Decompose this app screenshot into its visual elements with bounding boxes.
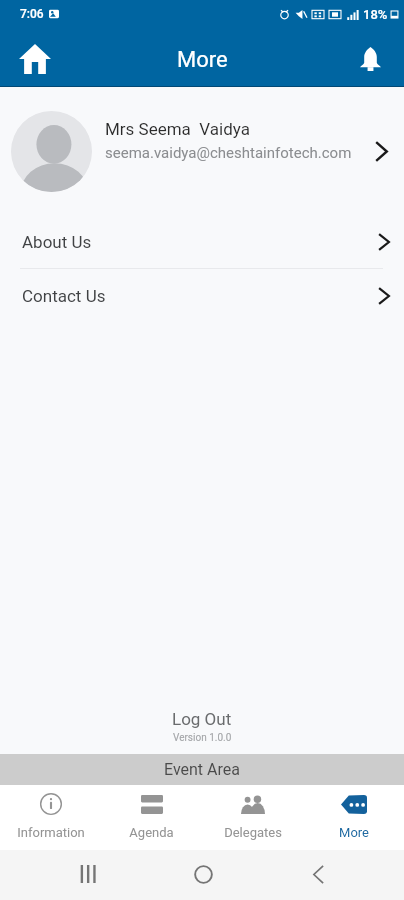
button[interactable]: Information: [0, 785, 101, 850]
staticText: 18%: [363, 7, 388, 22]
button[interactable]: Agenda: [101, 785, 202, 850]
other: Recents: [80, 865, 97, 883]
button[interactable]: Delegates: [202, 785, 303, 850]
button[interactable]: Contact Us: [0, 269, 404, 322]
staticText: Delegates: [224, 825, 282, 840]
staticText: seema.vaidya@cheshtainfotech.com: [105, 144, 352, 162]
staticText: More: [177, 47, 228, 73]
other: Open profile: [375, 141, 388, 162]
other: Back: [313, 865, 324, 884]
staticText: Version 1.0.0: [173, 732, 232, 744]
button[interactable]: About Us: [0, 215, 404, 268]
button[interactable]: Log Out: [154, 707, 250, 731]
staticText: About Us: [22, 232, 364, 252]
staticText: Information: [17, 825, 85, 840]
button[interactable]: Notifications: [346, 33, 394, 81]
staticText: Agenda: [129, 825, 174, 840]
staticText: Contact Us: [22, 286, 364, 306]
staticText: Event Area: [164, 760, 240, 779]
staticText: Mrs Seema Vaidya: [105, 119, 250, 139]
staticText: More: [339, 825, 369, 840]
button[interactable]: More: [303, 785, 404, 850]
staticText: 7:06: [20, 7, 44, 21]
button[interactable]: Home: [11, 33, 59, 81]
button[interactable]: Mrs Seema Vaidya: [0, 87, 404, 215]
staticText: Log Out: [172, 709, 232, 729]
other: Home: [194, 865, 213, 884]
